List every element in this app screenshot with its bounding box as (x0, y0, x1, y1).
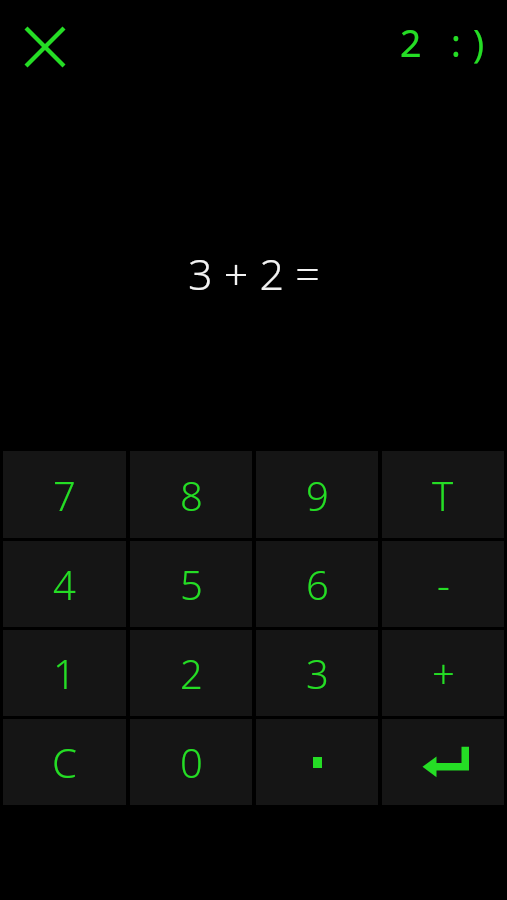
button[interactable]: 6 (256, 541, 378, 627)
button[interactable]: 4 (3, 541, 126, 627)
button[interactable]: T (382, 451, 504, 538)
button[interactable]: 2 :) (393, 14, 497, 70)
button[interactable]: 8 (130, 451, 252, 538)
button[interactable]: 5 (130, 541, 252, 627)
staticText: 2 :) (399, 16, 491, 68)
button[interactable]: 3 (256, 630, 378, 716)
staticText: T (432, 468, 454, 522)
button[interactable]: 0 (130, 719, 252, 805)
staticText: 5 (180, 557, 203, 611)
button[interactable]: + (382, 630, 504, 716)
staticText: 2 (180, 646, 203, 700)
staticText: 7 (53, 468, 76, 522)
staticText: 6 (306, 557, 329, 611)
staticText: - (437, 557, 450, 611)
button[interactable]: 9 (256, 451, 378, 538)
staticText: 3 (306, 646, 329, 700)
button[interactable] (256, 719, 378, 805)
staticText: + (432, 646, 455, 700)
button[interactable]: Enter (382, 719, 504, 805)
button[interactable]: 2 (130, 630, 252, 716)
staticText: 9 (306, 468, 329, 522)
button[interactable]: C (3, 719, 126, 805)
button[interactable]: 1 (3, 630, 126, 716)
staticText: 3 + 2 = (188, 244, 320, 303)
button[interactable]: - (382, 541, 504, 627)
staticText: 1 (53, 646, 76, 700)
staticText: 4 (53, 557, 76, 611)
staticText: C (52, 735, 77, 789)
staticText: 0 (180, 735, 203, 789)
staticText: 8 (180, 468, 203, 522)
button[interactable]: 7 (3, 451, 126, 538)
button[interactable]: Close (14, 16, 76, 78)
